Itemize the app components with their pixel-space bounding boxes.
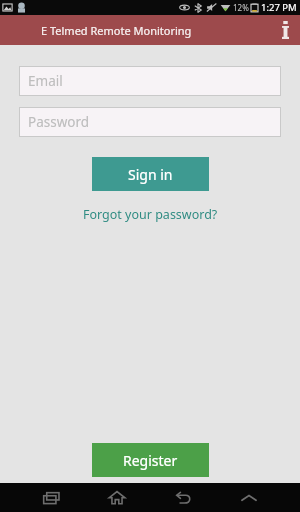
staticText: Forgot your password? <box>83 206 218 223</box>
button[interactable]: Information <box>270 15 300 45</box>
button[interactable]: Recent apps <box>33 483 69 512</box>
button[interactable]: Password <box>19 107 281 137</box>
staticText: Password <box>28 113 90 131</box>
staticText: E Telmed Remote Monitoring <box>41 23 192 38</box>
button[interactable]: Forgot your password? <box>77 204 224 225</box>
button[interactable]: Sign in <box>92 157 209 191</box>
staticText: Sign in <box>128 165 173 184</box>
staticText: Register <box>123 451 178 470</box>
staticText: 1:27 PM <box>261 1 297 14</box>
button[interactable]: Hide keyboard <box>231 483 267 512</box>
staticText: Email <box>28 72 63 90</box>
staticText: 12% <box>233 2 249 13</box>
button[interactable]: Home <box>99 483 135 512</box>
button[interactable]: Back <box>165 483 201 512</box>
button[interactable]: Email <box>19 66 281 96</box>
button[interactable]: Register <box>92 443 209 477</box>
